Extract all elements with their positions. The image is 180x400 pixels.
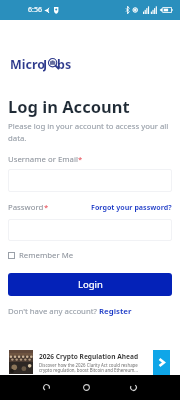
staticText: Username or Email xyxy=(8,154,78,165)
button[interactable]: 2026 Crypto Regulation Ahead xyxy=(0,350,180,375)
staticText: 2026 Crypto Regulation Ahead xyxy=(39,352,139,361)
staticText: Discover how the 2026 Clarity Act could … xyxy=(39,362,151,374)
button[interactable]: Home xyxy=(76,375,96,400)
button[interactable]: Remember Me xyxy=(8,250,74,261)
staticText: Log in Account xyxy=(8,95,130,117)
button[interactable]: Register xyxy=(99,306,132,317)
button[interactable]: Forgot your password? xyxy=(91,202,172,212)
staticText: 6:56 xyxy=(28,5,42,15)
staticText: Login xyxy=(78,278,103,291)
staticText: Remember Me xyxy=(19,250,74,261)
button[interactable]: Recent apps xyxy=(123,375,143,400)
staticText: * xyxy=(44,202,49,213)
staticText: Forgot your password? xyxy=(91,202,172,212)
button[interactable] xyxy=(8,169,172,192)
staticText: * xyxy=(78,154,83,165)
staticText: Please log in your account to access you… xyxy=(8,121,173,143)
button[interactable]: Open advertisement xyxy=(153,350,170,375)
staticText: Password xyxy=(8,202,44,213)
staticText: bs xyxy=(57,56,72,72)
staticText: Micro xyxy=(10,56,46,72)
staticText: Register xyxy=(99,306,132,317)
button[interactable] xyxy=(8,219,172,241)
button[interactable]: Back xyxy=(36,375,56,400)
button[interactable]: Login xyxy=(8,273,172,296)
staticText: J xyxy=(43,56,48,72)
staticText: Don't have any account? xyxy=(8,306,97,317)
